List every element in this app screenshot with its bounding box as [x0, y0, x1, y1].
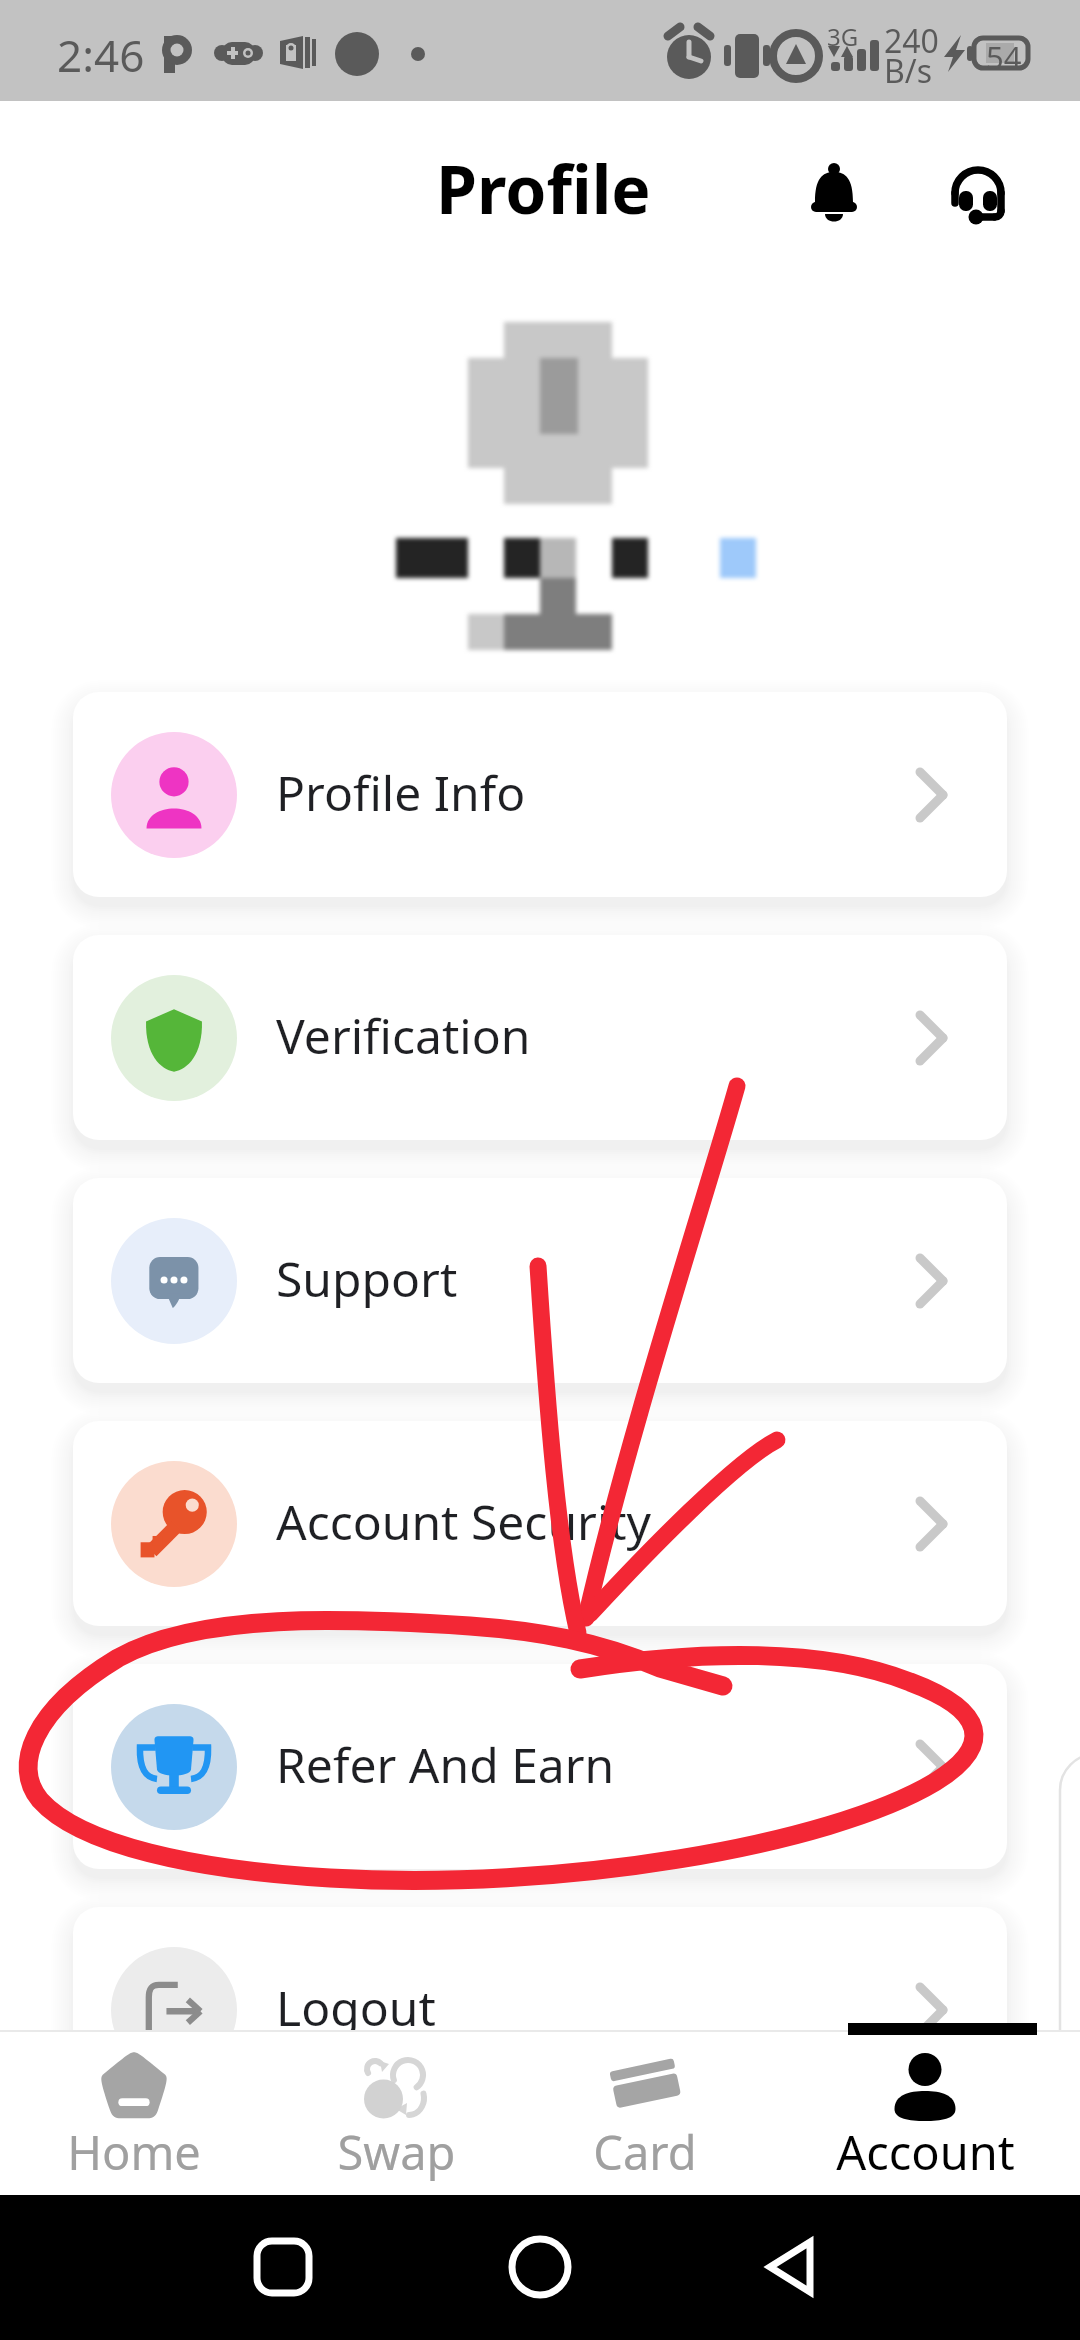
staticText: B/s — [884, 49, 933, 93]
button[interactable]: Profile Info — [73, 692, 1007, 897]
staticText: Profile — [436, 143, 651, 233]
staticText: Verification — [276, 1003, 531, 1068]
button[interactable]: Home — [470, 2219, 610, 2315]
staticText: Card — [593, 2120, 697, 2184]
staticText: Logout — [276, 1975, 436, 2040]
button[interactable]: Customer support — [932, 151, 1020, 239]
button[interactable]: Refer And Earn — [73, 1664, 1007, 1869]
staticText: 54 — [986, 36, 1022, 78]
button[interactable]: Swap — [266, 2030, 526, 2195]
staticText: Account — [836, 2120, 1015, 2184]
button[interactable]: Verification — [73, 935, 1007, 1140]
button[interactable]: Account — [795, 2030, 1055, 2195]
button[interactable]: Card — [515, 2030, 775, 2195]
staticText: 3G — [827, 20, 859, 53]
staticText: Home — [67, 2120, 201, 2184]
staticText: Refer And Earn — [276, 1732, 615, 1797]
staticText: 2:46 — [57, 25, 145, 85]
button[interactable]: Logout — [73, 1907, 1007, 2112]
button[interactable]: Recent apps — [213, 2219, 353, 2315]
staticText: Swap — [337, 2120, 456, 2184]
staticText: 240 — [884, 19, 939, 63]
button[interactable]: Notifications — [790, 152, 878, 240]
staticText: Profile Info — [276, 760, 526, 825]
button[interactable]: Back — [720, 2219, 860, 2315]
button[interactable]: Account Security — [73, 1421, 1007, 1626]
button[interactable]: Support — [73, 1178, 1007, 1383]
staticText: Account Security — [276, 1489, 652, 1554]
staticText: Support — [276, 1246, 458, 1311]
button[interactable]: Home — [4, 2030, 264, 2195]
